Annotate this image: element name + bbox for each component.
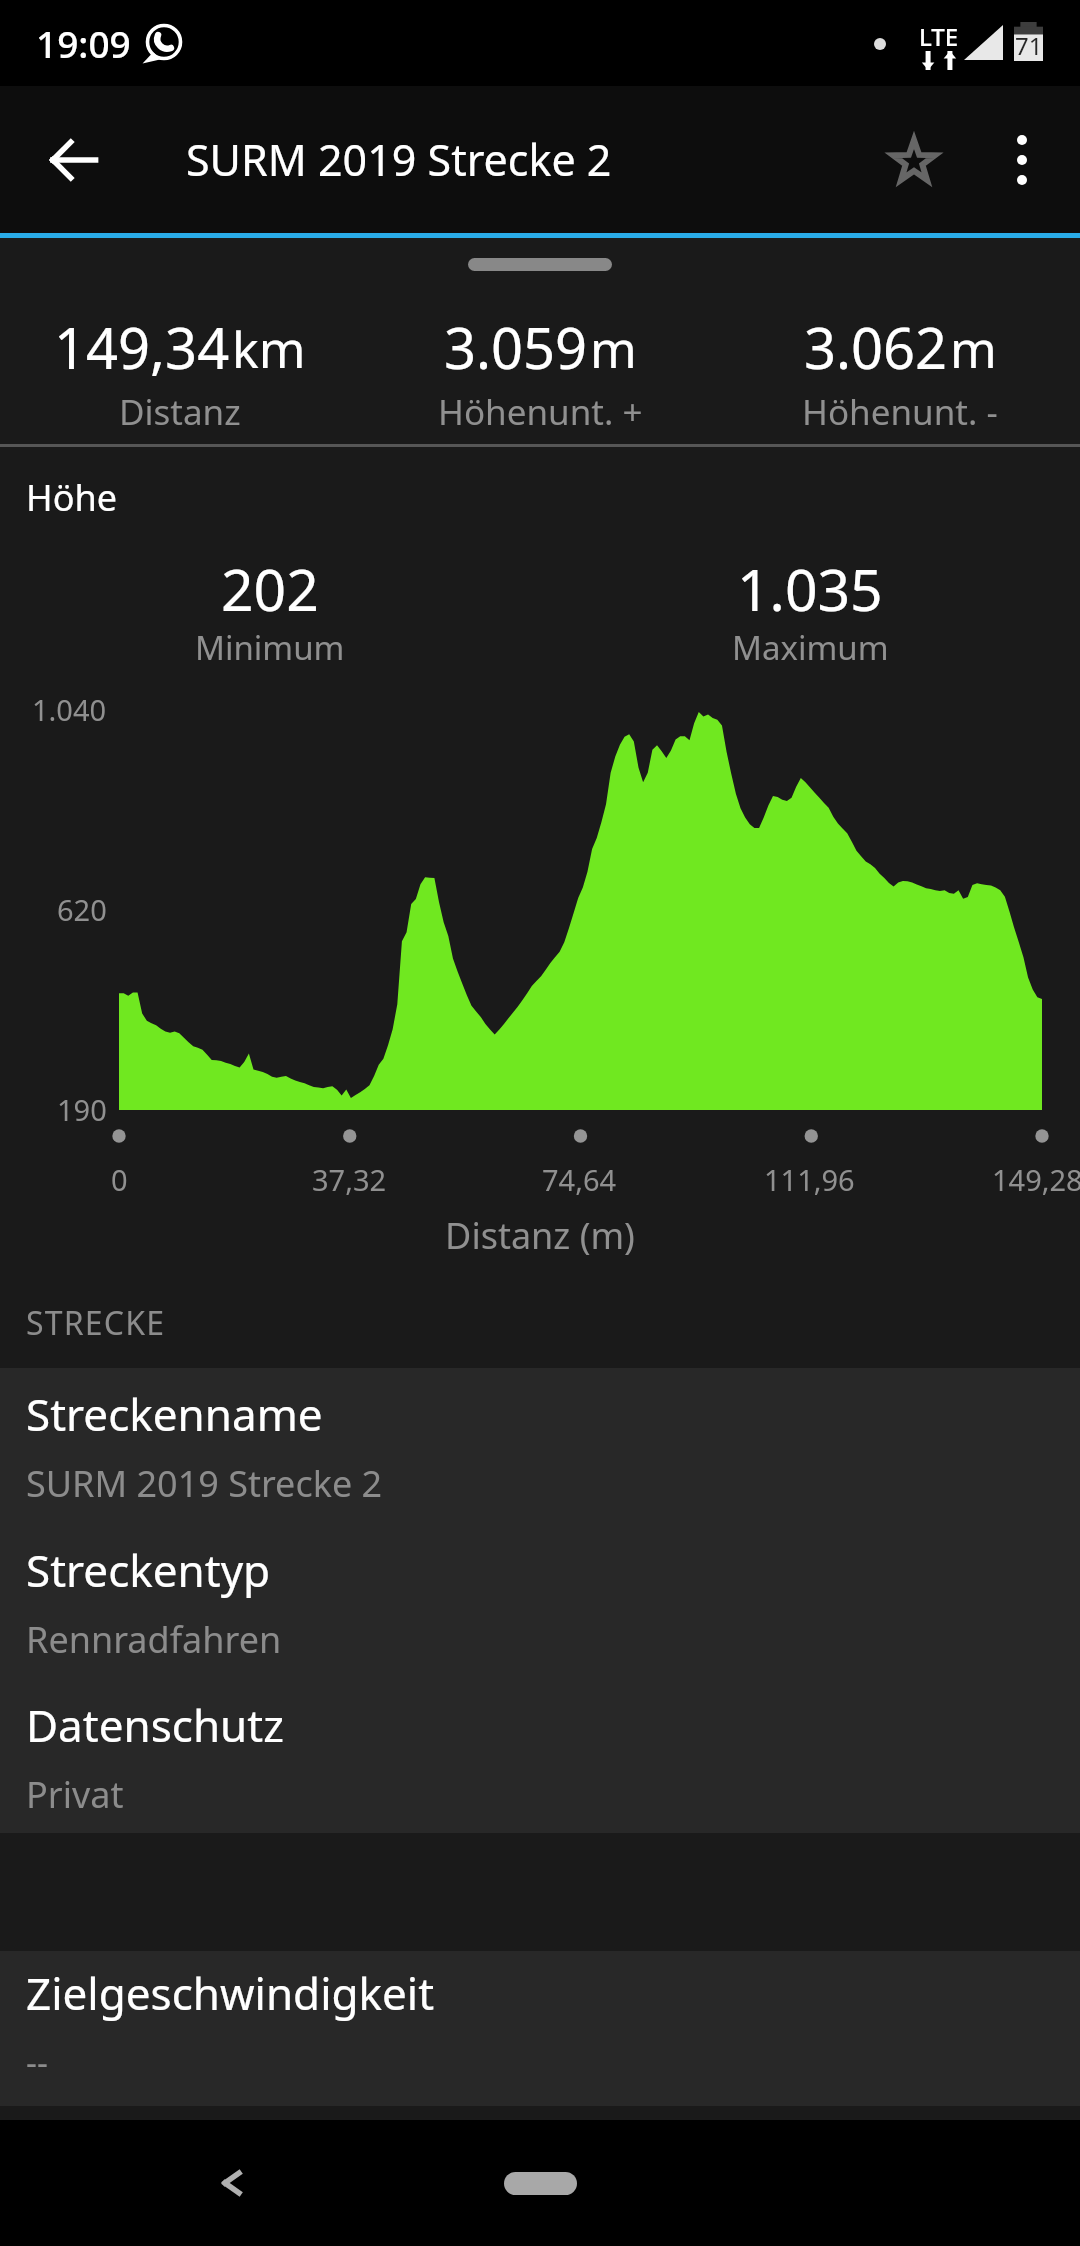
staticText: 74,64: [542, 1160, 617, 1199]
staticText: Datenschutz: [26, 1695, 284, 1755]
staticText: Höhenunt. -: [802, 388, 998, 436]
staticText: 1.040: [32, 690, 107, 729]
staticText: 0: [111, 1160, 128, 1199]
button[interactable]: Home: [504, 2172, 577, 2195]
staticText: Privat: [26, 1770, 124, 1819]
staticText: m: [950, 315, 997, 383]
staticText: 149,28: [992, 1160, 1080, 1199]
staticText: LTE: [919, 20, 959, 53]
button[interactable]: Zielgeschwindigkeit: [0, 1951, 1080, 2106]
staticText: 3.062: [804, 309, 948, 385]
staticText: STRECKE: [26, 1301, 166, 1345]
staticText: Distanz: [119, 388, 241, 436]
button[interactable]: Streckentyp: [0, 1524, 1080, 1679]
staticText: Zielgeschwindigkeit: [26, 1963, 435, 2023]
staticText: 190: [57, 1090, 107, 1129]
staticText: SURM 2019 Strecke 2: [26, 1459, 383, 1508]
staticText: 3.059: [444, 309, 588, 385]
staticText: Minimum: [195, 625, 345, 670]
staticText: 19:09: [36, 18, 131, 68]
staticText: Streckentyp: [26, 1540, 271, 1600]
staticText: Streckenname: [26, 1384, 323, 1444]
staticText: m: [590, 315, 637, 383]
button[interactable]: Streckenname: [0, 1368, 1080, 1524]
staticText: 202: [221, 550, 319, 628]
staticText: 1.035: [737, 550, 883, 628]
staticText: 37,32: [312, 1160, 387, 1199]
button[interactable]: [0, 244, 1080, 444]
staticText: Distanz (m): [0, 1211, 1080, 1260]
staticText: --: [26, 2039, 48, 2085]
staticText: Rennradfahren: [26, 1615, 282, 1664]
staticText: SURM 2019 Strecke 2: [186, 130, 612, 189]
button[interactable]: Datenschutz: [0, 1679, 1080, 1833]
staticText: Höhe: [26, 473, 118, 522]
staticText: Maximum: [732, 625, 889, 670]
button[interactable]: More options: [974, 112, 1070, 208]
staticText: 149,34: [54, 309, 230, 385]
button[interactable]: Favorite: [866, 112, 962, 208]
staticText: Höhenunt. +: [438, 388, 643, 436]
staticText: 71: [1015, 29, 1043, 62]
staticText: 620: [57, 890, 107, 929]
button[interactable]: Back: [26, 112, 122, 208]
button[interactable]: Back: [183, 2133, 283, 2233]
staticText: 111,96: [764, 1160, 855, 1199]
staticText: km: [232, 315, 306, 383]
